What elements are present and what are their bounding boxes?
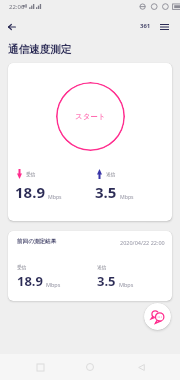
staticText: Mbps bbox=[120, 193, 134, 200]
staticText: 18.9 bbox=[17, 272, 43, 290]
staticText: Mbps bbox=[119, 281, 134, 288]
staticText: 受信 bbox=[17, 264, 27, 270]
staticText: 3.5 bbox=[97, 272, 116, 290]
staticText: スタート bbox=[75, 112, 106, 121]
staticText: 18.9 bbox=[15, 182, 45, 202]
button[interactable]: Back bbox=[3, 18, 20, 35]
staticText: 361 bbox=[140, 22, 151, 30]
button[interactable]: Chat support bbox=[144, 303, 171, 330]
staticText: 送信 bbox=[97, 264, 107, 270]
staticText: 22:00 bbox=[9, 3, 25, 11]
staticText: 送信 bbox=[106, 171, 116, 177]
button[interactable]: スタート bbox=[56, 82, 125, 151]
staticText: 受信 bbox=[26, 171, 36, 177]
staticText: Mbps bbox=[46, 281, 61, 288]
staticText: 3.5 bbox=[95, 182, 117, 202]
button[interactable]: Recents bbox=[29, 356, 51, 378]
staticText: 前回の測定結果 bbox=[17, 238, 57, 245]
button[interactable]: Back bbox=[130, 356, 152, 378]
staticText: Mbps bbox=[48, 193, 62, 200]
button[interactable]: Menu bbox=[156, 18, 173, 35]
staticText: 2020/04/22 22:00 bbox=[120, 239, 165, 246]
button[interactable]: Home bbox=[79, 356, 101, 378]
staticText: 通信速度測定 bbox=[8, 43, 71, 56]
button[interactable]: 前回の測定結果 bbox=[8, 231, 172, 301]
